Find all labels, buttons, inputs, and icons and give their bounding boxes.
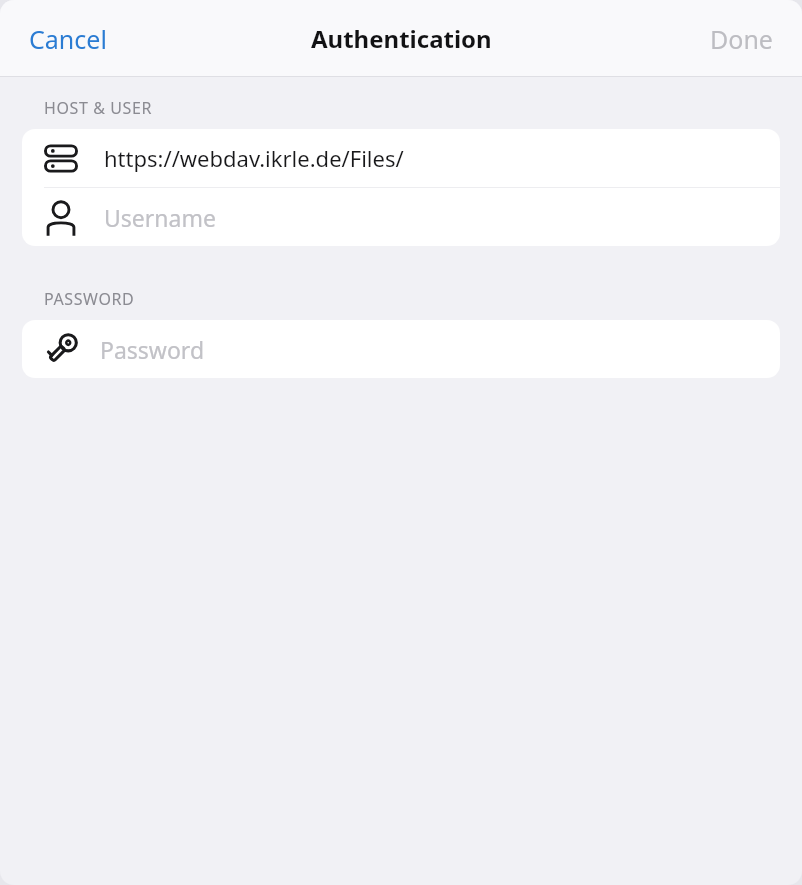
button[interactable]: Done	[693, 14, 790, 64]
staticText: Authentication	[311, 22, 492, 55]
staticText: Cancel	[29, 22, 107, 56]
other: User	[44, 200, 78, 234]
staticText: PASSWORD	[44, 288, 135, 310]
button[interactable]: User	[22, 188, 780, 246]
staticText: https://webdav.ikrle.de/Files/	[104, 143, 404, 173]
other: Password	[44, 331, 80, 367]
button[interactable]: Password	[22, 320, 780, 378]
staticText: HOST & USER	[44, 97, 152, 119]
button[interactable]: Cancel	[12, 14, 124, 64]
staticText: Done	[710, 22, 773, 56]
staticText: Password	[100, 334, 205, 365]
button[interactable]: Server	[22, 129, 780, 187]
staticText: Username	[104, 202, 216, 233]
other: Server	[44, 142, 78, 175]
